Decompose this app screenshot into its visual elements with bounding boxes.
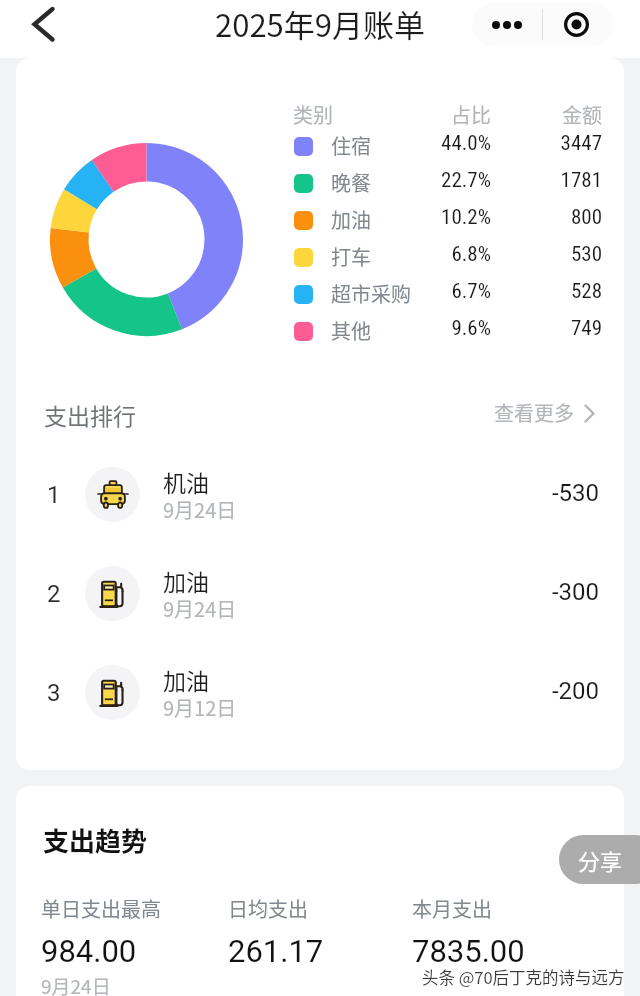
staticText: 金额: [522, 100, 602, 129]
staticText: 1781: [512, 168, 602, 193]
staticText: 749: [512, 316, 602, 341]
staticText: 9月12日: [163, 693, 237, 722]
staticText: 加油: [163, 564, 209, 597]
staticText: 日均支出: [228, 894, 308, 923]
staticText: 9.6%: [381, 316, 491, 341]
staticText: 261.17: [228, 933, 324, 969]
staticText: 单日支出最高: [41, 894, 161, 923]
staticText: 加油: [331, 205, 371, 234]
staticText: 984.00: [41, 933, 137, 969]
button[interactable]: Close mini program: [543, 3, 613, 46]
staticText: 2025年9月账单: [215, 1, 426, 46]
staticText: 住宿: [331, 131, 371, 160]
button[interactable]: Back: [14, 2, 68, 56]
staticText: -300: [509, 578, 599, 606]
button[interactable]: [16, 445, 624, 543]
staticText: 1: [47, 481, 61, 509]
staticText: 支出排行: [44, 398, 136, 431]
button[interactable]: [16, 643, 624, 741]
staticText: 查看更多: [494, 398, 574, 427]
staticText: 528: [512, 279, 602, 304]
staticText: 10.2%: [381, 205, 491, 230]
staticText: 2: [47, 580, 61, 608]
staticText: 晚餐: [331, 168, 371, 197]
button[interactable]: [16, 544, 624, 642]
staticText: 其他: [331, 316, 371, 345]
staticText: -530: [509, 479, 599, 507]
staticText: 分享: [578, 844, 623, 876]
staticText: -200: [509, 677, 599, 705]
staticText: 800: [512, 205, 602, 230]
staticText: 加油: [163, 663, 209, 696]
staticText: 44.0%: [381, 131, 491, 156]
staticText: 22.7%: [381, 168, 491, 193]
button[interactable]: More options: [472, 3, 543, 46]
staticText: 9月24日: [163, 495, 237, 524]
staticText: 打车: [331, 242, 371, 271]
button[interactable]: 分享: [559, 835, 640, 884]
staticText: 机油: [163, 465, 209, 498]
staticText: 占比: [411, 100, 491, 129]
staticText: 7835.00: [412, 933, 525, 969]
staticText: 头条 @70后丁克的诗与远方: [422, 965, 625, 989]
staticText: 9月24日: [163, 594, 237, 623]
staticText: 6.7%: [381, 279, 491, 304]
button[interactable]: 查看更多: [486, 394, 608, 432]
staticText: 3: [47, 679, 61, 707]
staticText: 支出趋势: [43, 821, 148, 859]
staticText: 6.8%: [381, 242, 491, 267]
staticText: 3447: [512, 131, 602, 156]
staticText: 超市采购: [331, 279, 411, 308]
staticText: 9月24日: [41, 972, 111, 996]
staticText: 本月支出: [412, 894, 492, 923]
staticText: 类别: [293, 100, 333, 129]
staticText: 530: [512, 242, 602, 267]
